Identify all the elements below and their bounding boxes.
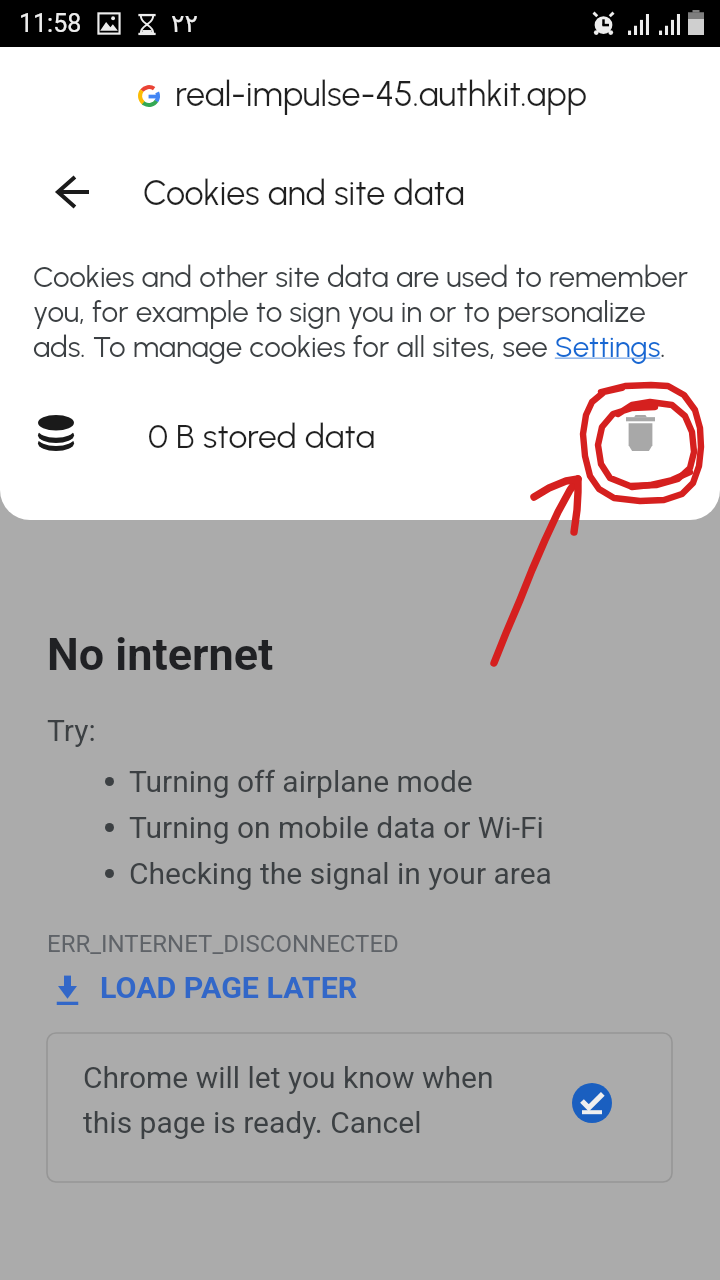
staticText: Turning on mobile data or Wi-Fi [129, 810, 544, 845]
staticText: Turning off airplane mode [129, 764, 473, 799]
staticText: No internet [47, 628, 274, 681]
staticText: Chrome will let you know when this page … [83, 1060, 511, 1140]
button[interactable]: Back [40, 160, 106, 226]
staticText: Try: [47, 713, 96, 748]
staticText: ٢٢ [171, 9, 198, 38]
staticText: 11:58 [19, 9, 82, 38]
button[interactable]: Delete stored data [602, 398, 678, 474]
staticText: ERR_INTERNET_DISCONNECTED [47, 930, 399, 958]
staticText: Checking the signal in your area [129, 856, 552, 891]
button[interactable]: 0 B stored data [0, 393, 720, 479]
staticText: Cookies and site data [143, 173, 465, 214]
button[interactable]: Download complete [572, 1083, 612, 1123]
staticText: 0 B stored data [148, 416, 375, 456]
staticText: LOAD PAGE LATER [100, 970, 358, 1006]
staticText: real-impulse-45.authkit.app [175, 74, 588, 115]
staticText: Cookies and other site data are used to … [33, 259, 698, 364]
button[interactable]: LOAD PAGE LATER [47, 963, 358, 1013]
